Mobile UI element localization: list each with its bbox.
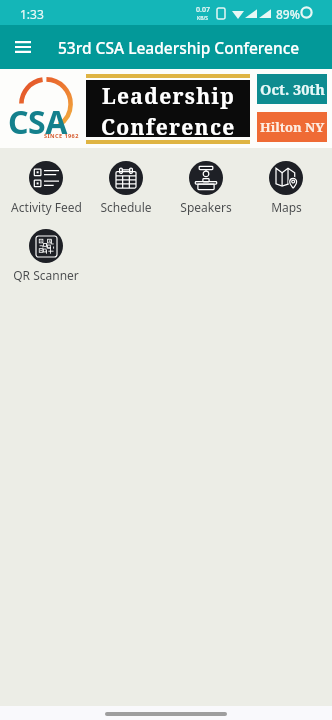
button[interactable]: QR Scanner	[6, 229, 86, 283]
staticText: Schedule	[100, 199, 152, 215]
staticText: Oct. 30th	[260, 79, 325, 99]
button[interactable]: Schedule	[86, 161, 166, 215]
button[interactable]: Open navigation menu	[6, 30, 40, 64]
staticText: Hilton NY	[260, 118, 325, 136]
staticText: Conference	[101, 113, 236, 139]
staticText: KB/S	[197, 15, 209, 22]
staticText: 1:33	[20, 6, 44, 22]
button[interactable]: Speakers	[166, 161, 246, 215]
button[interactable]: Maps	[246, 161, 326, 215]
staticText: 0.07	[196, 5, 210, 15]
staticText: Activity Feed	[11, 199, 82, 215]
staticText: CSA	[8, 100, 67, 144]
staticText: Maps	[271, 199, 302, 215]
staticText: 89%	[276, 6, 300, 22]
staticText: Speakers	[180, 199, 232, 215]
staticText: QR Scanner	[13, 267, 79, 283]
button[interactable]: Activity Feed	[6, 161, 86, 215]
staticText: 53rd CSA Leadership Conference	[58, 37, 300, 58]
staticText: SINCE 1962	[44, 132, 79, 140]
staticText: Leadership	[102, 82, 236, 111]
